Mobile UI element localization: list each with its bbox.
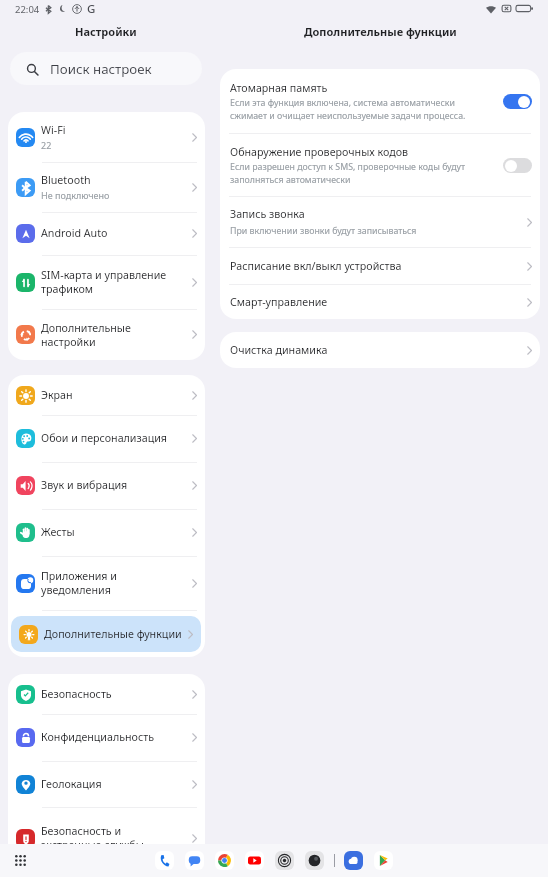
button[interactable]: Экран [8,375,205,415]
button[interactable]: Облако [344,851,363,870]
staticText: 22 [41,139,52,151]
staticText: Wi-Fi [41,123,66,138]
staticText: Расписание вкл/выкл устройства [230,259,402,274]
button[interactable]: Расписание вкл/выкл устройства [220,248,540,284]
button[interactable]: Сообщения [185,851,204,870]
button[interactable]: Конфиденциальность [8,714,205,761]
button[interactable]: Wi-Fi [8,112,205,162]
button[interactable]: Все приложения [11,851,30,870]
staticText: Конфиденциальность [41,730,155,745]
button[interactable]: SIM-карта и управление трафиком [8,255,205,309]
staticText: 22:04 [15,3,40,16]
staticText: Безопасность и экстренные службы [41,824,144,852]
button[interactable]: Play Маркет [374,851,393,870]
staticText: Обнаружение проверочных кодов [230,145,409,160]
staticText: G [87,1,96,17]
staticText: Смарт-управление [230,295,328,310]
staticText: При включении звонки будут записываться [230,225,417,237]
button[interactable]: Дополнительные настройки [8,309,205,360]
button[interactable]: Дополнительные функции [11,616,201,652]
button[interactable]: Смарт-управление [220,285,540,319]
button[interactable]: Безопасность [8,674,205,714]
button[interactable]: YouTube [245,851,264,870]
staticText: Если эта функция включена, система автом… [230,97,466,122]
staticText: Если разрешен доступ к SMS, проверочные … [230,161,466,186]
button[interactable]: Очистка динамика [220,332,540,368]
button[interactable]: Приложения и уведомления [8,556,205,610]
staticText: Запись звонка [230,207,305,222]
staticText: SIM-карта и управление трафиком [41,268,167,296]
staticText: Атомарная память [230,81,328,96]
staticText: Дополнительные функции [44,627,182,642]
staticText: Звук и вибрация [41,478,128,493]
staticText: Приложения и уведомления [41,569,117,597]
staticText: Дополнительные настройки [41,321,131,349]
button[interactable]: Bluetooth [8,162,205,212]
button[interactable]: Поиск настроек [10,52,202,85]
staticText: Экран [41,388,73,403]
button[interactable]: Запись звонка [220,197,540,247]
staticText: Очистка динамика [230,343,328,358]
button[interactable]: Chrome [215,851,234,870]
button[interactable]: Выключить [503,94,532,109]
button[interactable]: Телефон [155,851,174,870]
button[interactable]: Звук и вибрация [8,462,205,509]
staticText: Обои и персонализация [41,431,167,446]
button[interactable]: Обнаружение проверочных кодов [220,134,540,196]
staticText: Жесты [41,525,75,540]
button[interactable]: Поиск [275,851,294,870]
button[interactable]: Android Auto [8,212,205,255]
staticText: Поиск настроек [50,60,152,78]
button[interactable]: Обои и персонализация [8,415,205,462]
button[interactable]: Включить [503,158,532,173]
button[interactable]: Геолокация [8,761,205,807]
staticText: Геолокация [41,777,102,792]
staticText: Безопасность [41,687,112,702]
staticText: Дополнительные функции [304,24,457,39]
staticText: Android Auto [41,226,108,241]
staticText: Настройки [75,24,137,39]
button[interactable]: Жесты [8,509,205,556]
button[interactable]: Атомарная память [220,69,540,133]
staticText: Не подключено [41,189,110,201]
button[interactable]: Безопасность и экстренные службы [8,807,205,869]
staticText: Bluetooth [41,173,91,188]
button[interactable]: Камера [305,851,324,870]
